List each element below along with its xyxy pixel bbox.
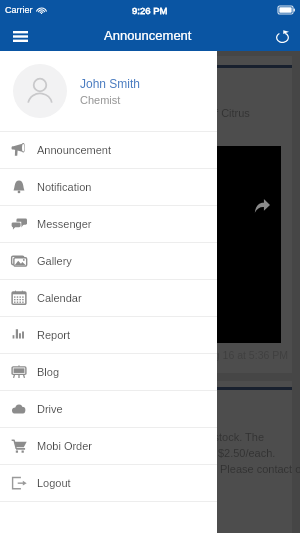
staticText: Carrier (5, 5, 33, 15)
staticText: Gallery (37, 255, 72, 267)
staticText: price is $2.50/each. (180, 447, 276, 459)
button[interactable]: Notification (0, 169, 217, 205)
staticText: Announcement (104, 28, 192, 43)
button[interactable]: Report (0, 317, 217, 353)
staticText: Please contact our (220, 463, 300, 475)
staticText: We have new stock. The (144, 431, 265, 443)
button[interactable]: Logout (0, 465, 217, 501)
button[interactable]: John Smith (0, 51, 217, 131)
button[interactable]: Announcement (0, 132, 217, 168)
staticText: Chemist (80, 94, 121, 106)
staticText: 9:26 PM (132, 5, 168, 16)
staticText: Notification (37, 181, 92, 193)
button[interactable]: Open navigation menu (8, 24, 32, 48)
staticText: John Smith (80, 77, 141, 90)
button[interactable]: Blog (0, 354, 217, 390)
button[interactable]: Gallery (0, 243, 217, 279)
staticText: Fresh stock of Citrus (149, 107, 250, 119)
button[interactable]: Calendar (0, 280, 217, 316)
staticText: Announcement (37, 144, 111, 156)
staticText: Aug 16 at 5:36 PM (201, 349, 288, 361)
staticText: Blog (37, 366, 60, 378)
staticText: Logout (37, 477, 71, 489)
button[interactable]: Refresh (270, 24, 294, 48)
staticText: Messenger (37, 218, 92, 230)
staticText: Report (37, 329, 71, 341)
staticText: Calendar (37, 292, 82, 304)
button[interactable]: Mobi Order (0, 428, 217, 464)
button[interactable]: Drive (0, 391, 217, 427)
staticText: Drive (37, 403, 63, 415)
staticText: Mobi Order (37, 440, 93, 452)
button[interactable]: Messenger (0, 206, 217, 242)
